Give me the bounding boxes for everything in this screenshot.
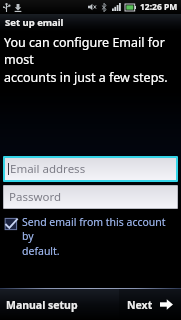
staticText: Next (127, 298, 153, 312)
staticText: Email address (10, 161, 86, 177)
staticText: 12:26 PM (140, 1, 178, 13)
button[interactable]: Send email from this account by (3, 215, 178, 258)
staticText: accounts in just a few steps. (4, 69, 168, 86)
staticText: Send email from this account by (22, 215, 178, 243)
other: Next (160, 299, 173, 310)
staticText: Password (9, 189, 62, 205)
button[interactable]: Password (4, 186, 177, 208)
button[interactable]: Email address (5, 158, 176, 180)
staticText: You can configure Email for most (4, 34, 177, 68)
staticText: default. (22, 244, 60, 258)
button[interactable]: Next (119, 289, 181, 320)
staticText: Set up email (5, 16, 64, 29)
staticText: Manual setup (6, 298, 78, 312)
button[interactable]: Manual setup (0, 289, 119, 320)
